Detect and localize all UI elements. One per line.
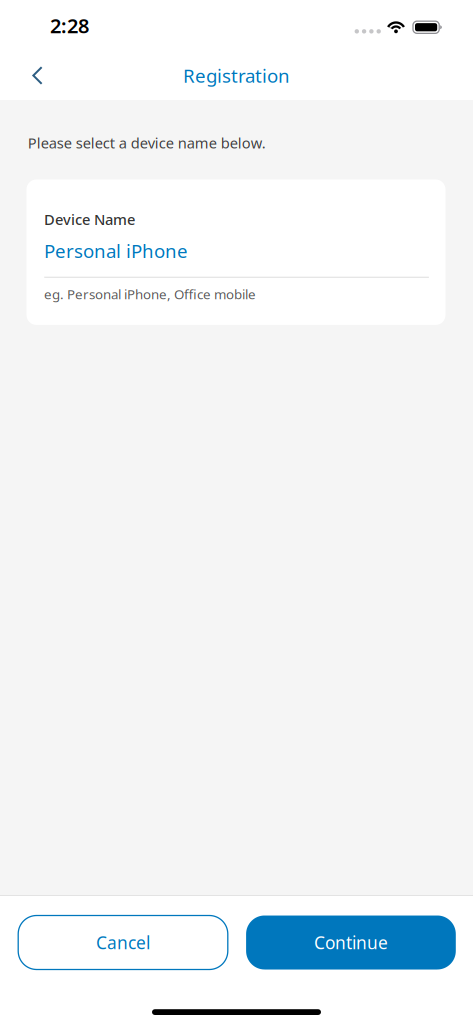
button[interactable]: Continue (246, 915, 456, 969)
staticText: Cancel (96, 931, 150, 954)
staticText: Please select a device name below. (28, 133, 266, 152)
staticText: Continue (314, 931, 388, 954)
staticText: 2:28 (50, 12, 89, 39)
button[interactable]: Cancel (18, 915, 228, 969)
staticText: Registration (183, 63, 290, 88)
staticText: Device Name (44, 209, 135, 229)
staticText: eg. Personal iPhone, Office mobile (44, 285, 256, 303)
staticText: Personal iPhone (44, 238, 188, 263)
button[interactable]: Back (15, 53, 59, 97)
